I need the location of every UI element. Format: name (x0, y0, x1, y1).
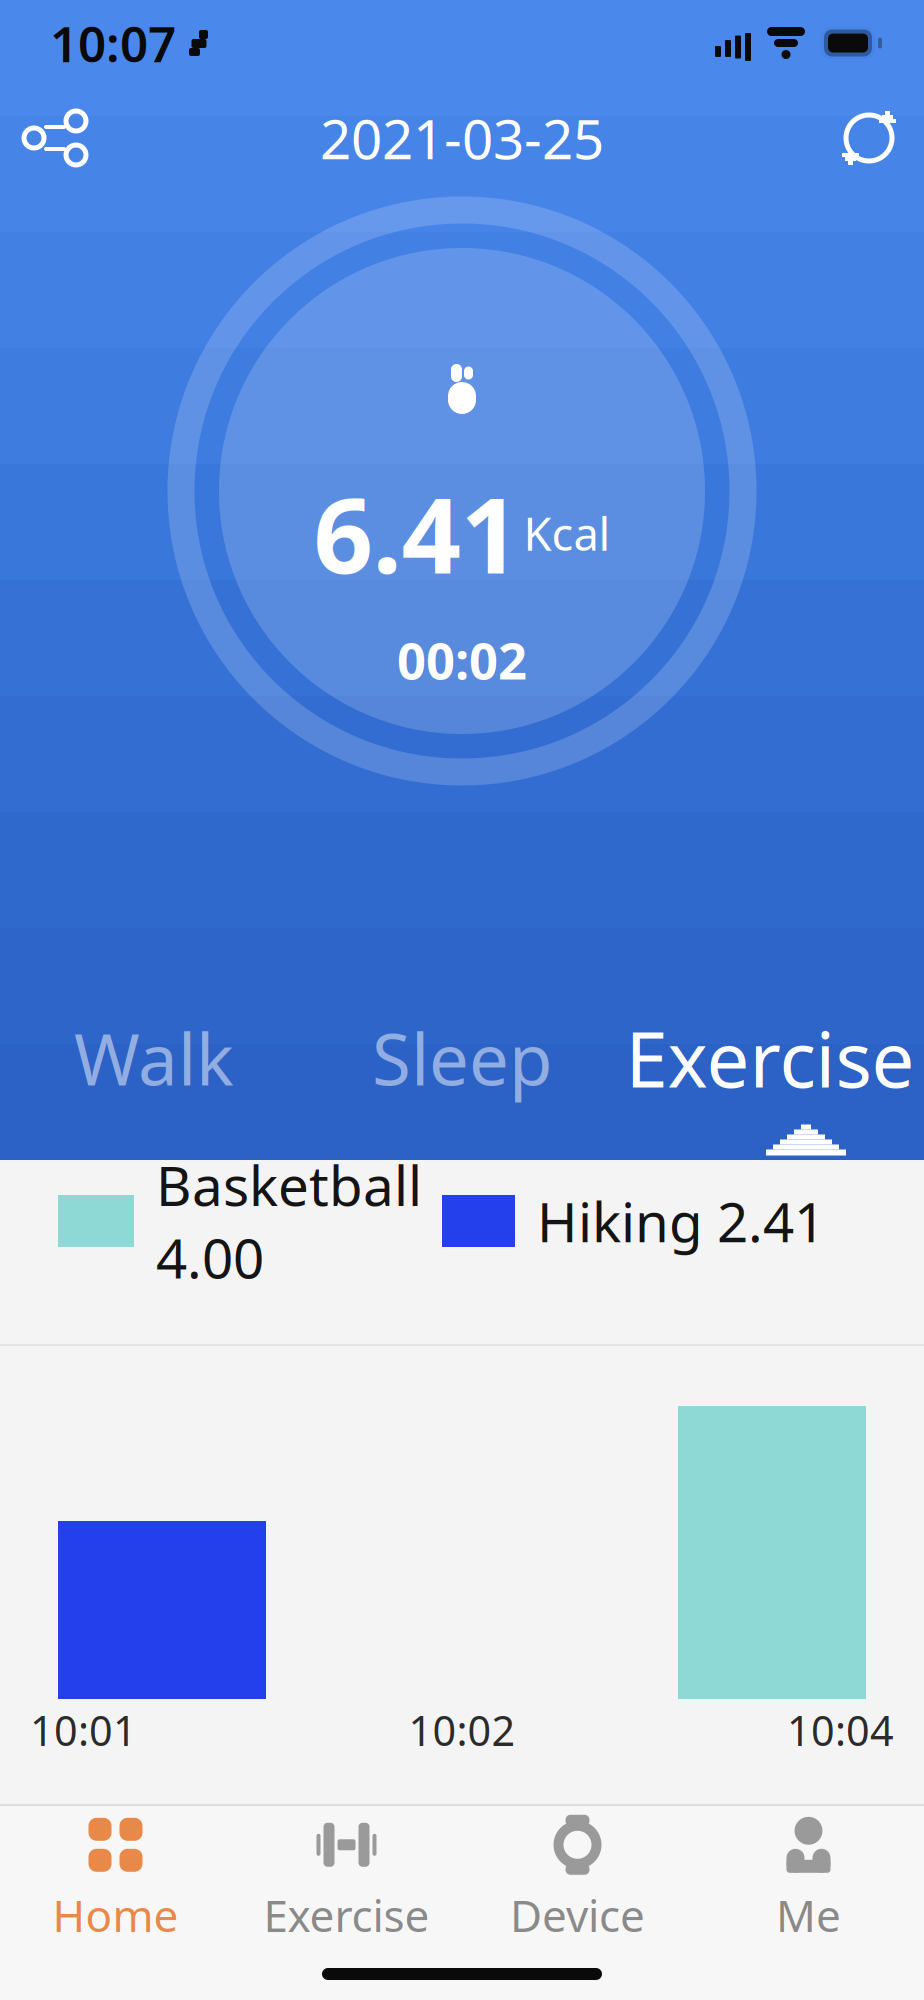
staticText: 6.41 (313, 464, 519, 602)
staticText: Exercise (263, 1886, 429, 1944)
staticText: Device (510, 1886, 645, 1944)
staticText: Sleep (372, 1011, 552, 1105)
staticText: Hiking 2.41 (537, 1185, 825, 1257)
staticText: 2021-03-25 (320, 102, 604, 174)
staticText: Exercise (625, 1007, 914, 1108)
button[interactable]: Exercise (616, 996, 924, 1120)
button[interactable]: Sleep (308, 996, 616, 1120)
button[interactable]: Share (0, 92, 110, 184)
staticText: 10:01 (30, 1703, 137, 1757)
staticText: Home (52, 1886, 178, 1944)
staticText: 10:04 (787, 1703, 894, 1757)
staticText: Walk (74, 1011, 234, 1105)
staticText: Basketball 4.00 (156, 1148, 422, 1294)
button[interactable]: Device (462, 1806, 693, 1954)
button[interactable]: Exercise (231, 1806, 462, 1954)
staticText: 10:02 (408, 1703, 515, 1757)
staticText: Kcal (523, 503, 610, 563)
button[interactable]: Home (0, 1806, 231, 1954)
staticText: 00:02 (397, 626, 527, 693)
staticText: Me (776, 1886, 841, 1944)
button[interactable]: Refresh (814, 92, 924, 184)
staticText: 10:07 (50, 10, 176, 76)
button[interactable]: Me (693, 1806, 924, 1954)
button[interactable]: Walk (0, 996, 308, 1120)
